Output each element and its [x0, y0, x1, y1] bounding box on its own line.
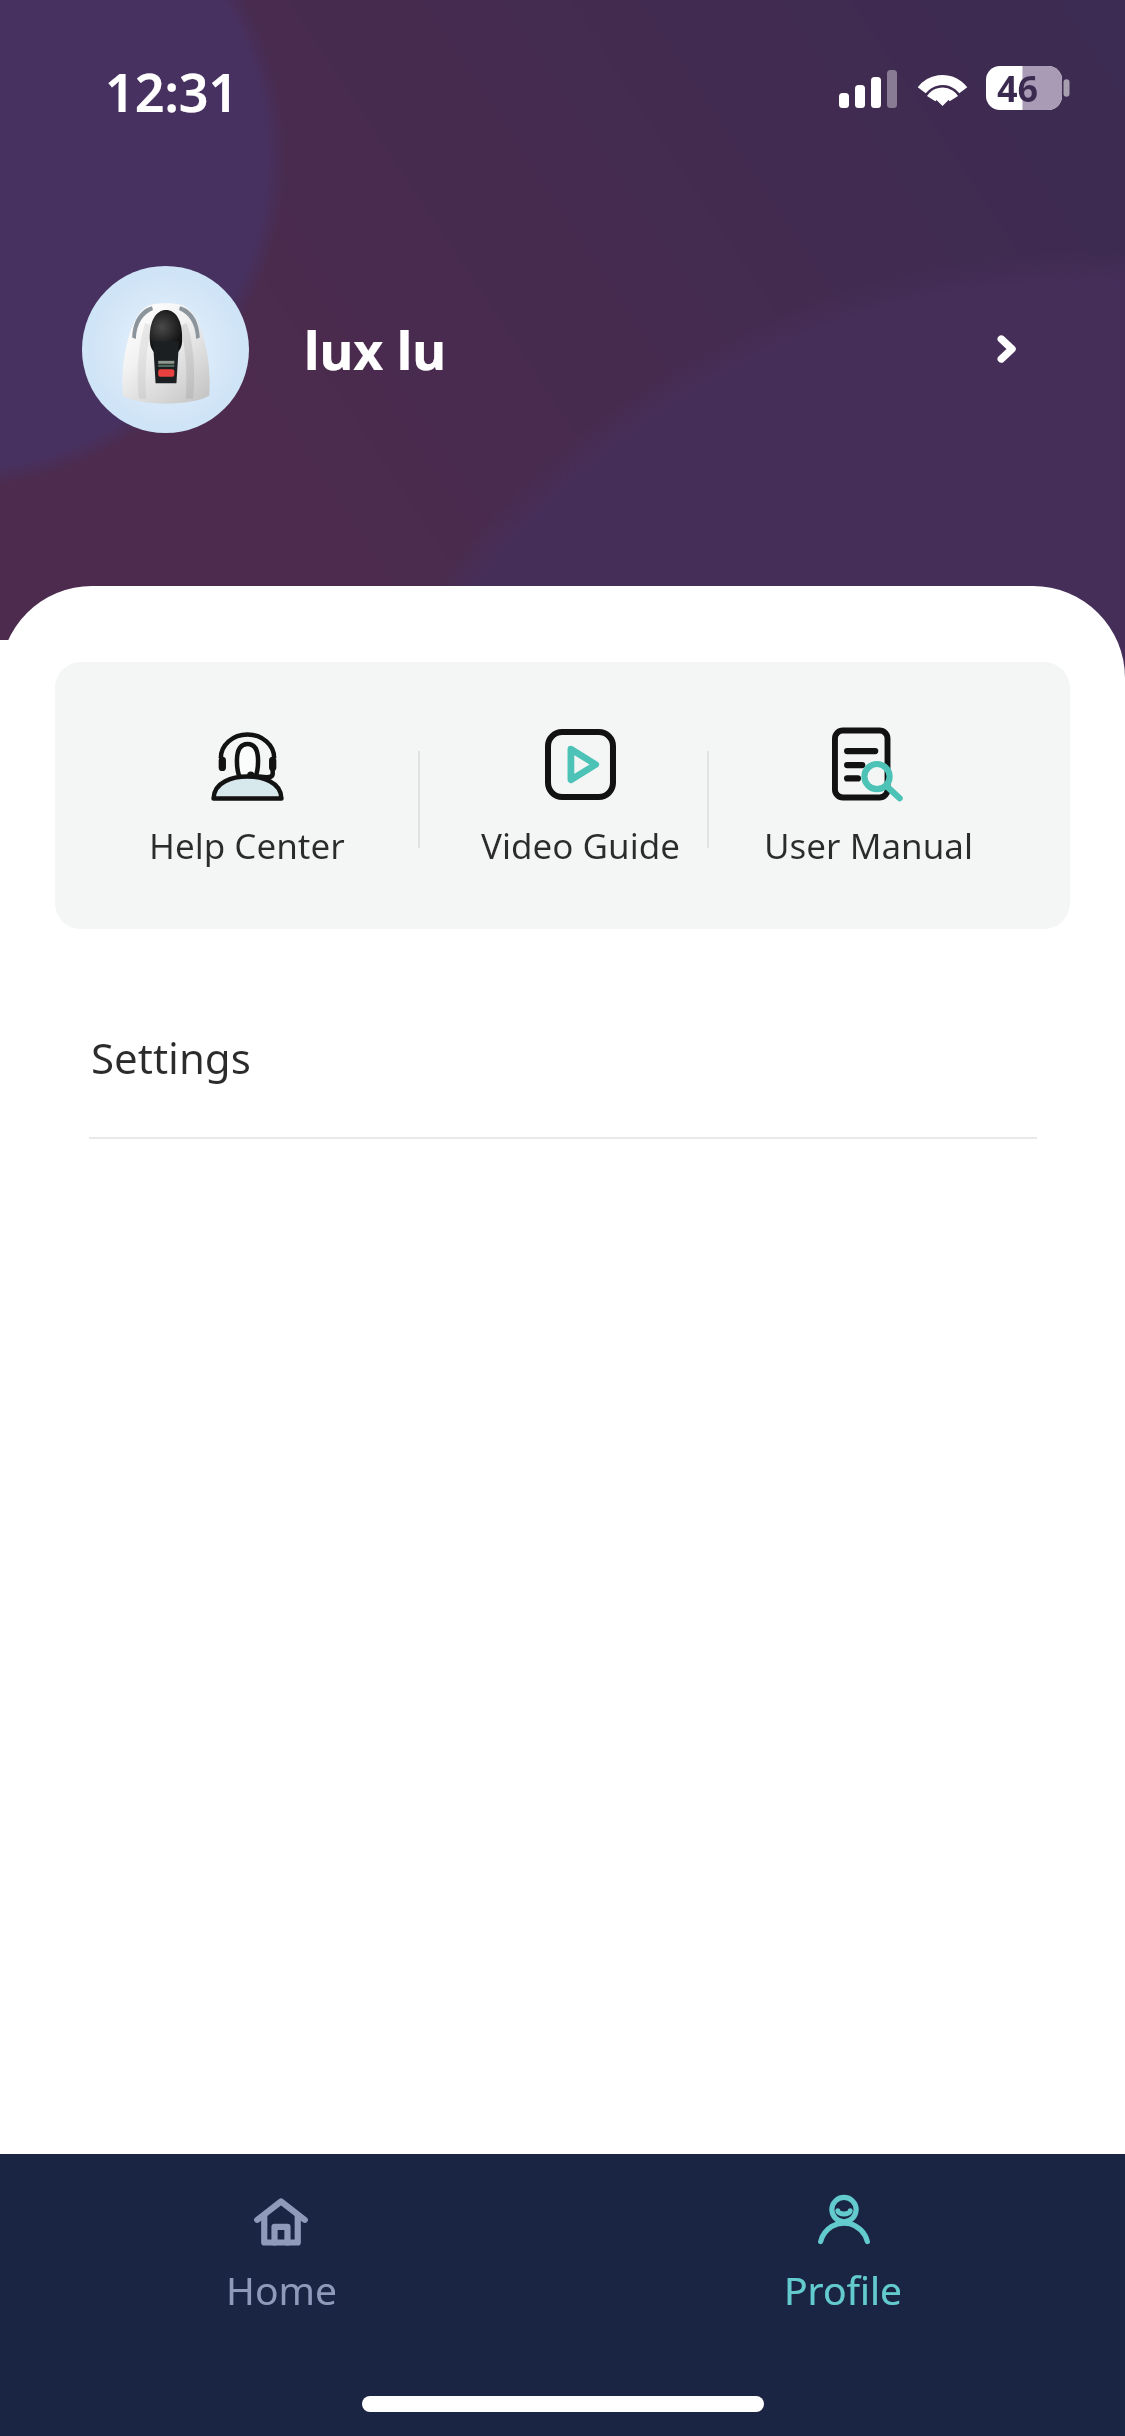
staticText: Video Guide: [481, 822, 680, 870]
staticText: Settings: [91, 1029, 251, 1086]
button[interactable]: Home: [0, 2154, 562, 2316]
button[interactable]: lux lu: [0, 258, 1125, 440]
staticText: Home: [226, 2263, 337, 2316]
staticText: 46: [997, 64, 1039, 113]
button[interactable]: Profile: [562, 2154, 1125, 2316]
staticText: lux lu: [304, 314, 447, 385]
staticText: User Manual: [764, 822, 973, 870]
staticText: 12:31: [105, 56, 239, 127]
button[interactable]: User Manual: [748, 726, 988, 870]
button[interactable]: Help Center: [127, 726, 367, 870]
button[interactable]: Open account details: [989, 325, 1037, 373]
staticText: Profile: [784, 2263, 903, 2316]
button[interactable]: Settings: [0, 1029, 1125, 1139]
button[interactable]: Video Guide: [460, 726, 700, 870]
staticText: Help Center: [149, 822, 345, 870]
